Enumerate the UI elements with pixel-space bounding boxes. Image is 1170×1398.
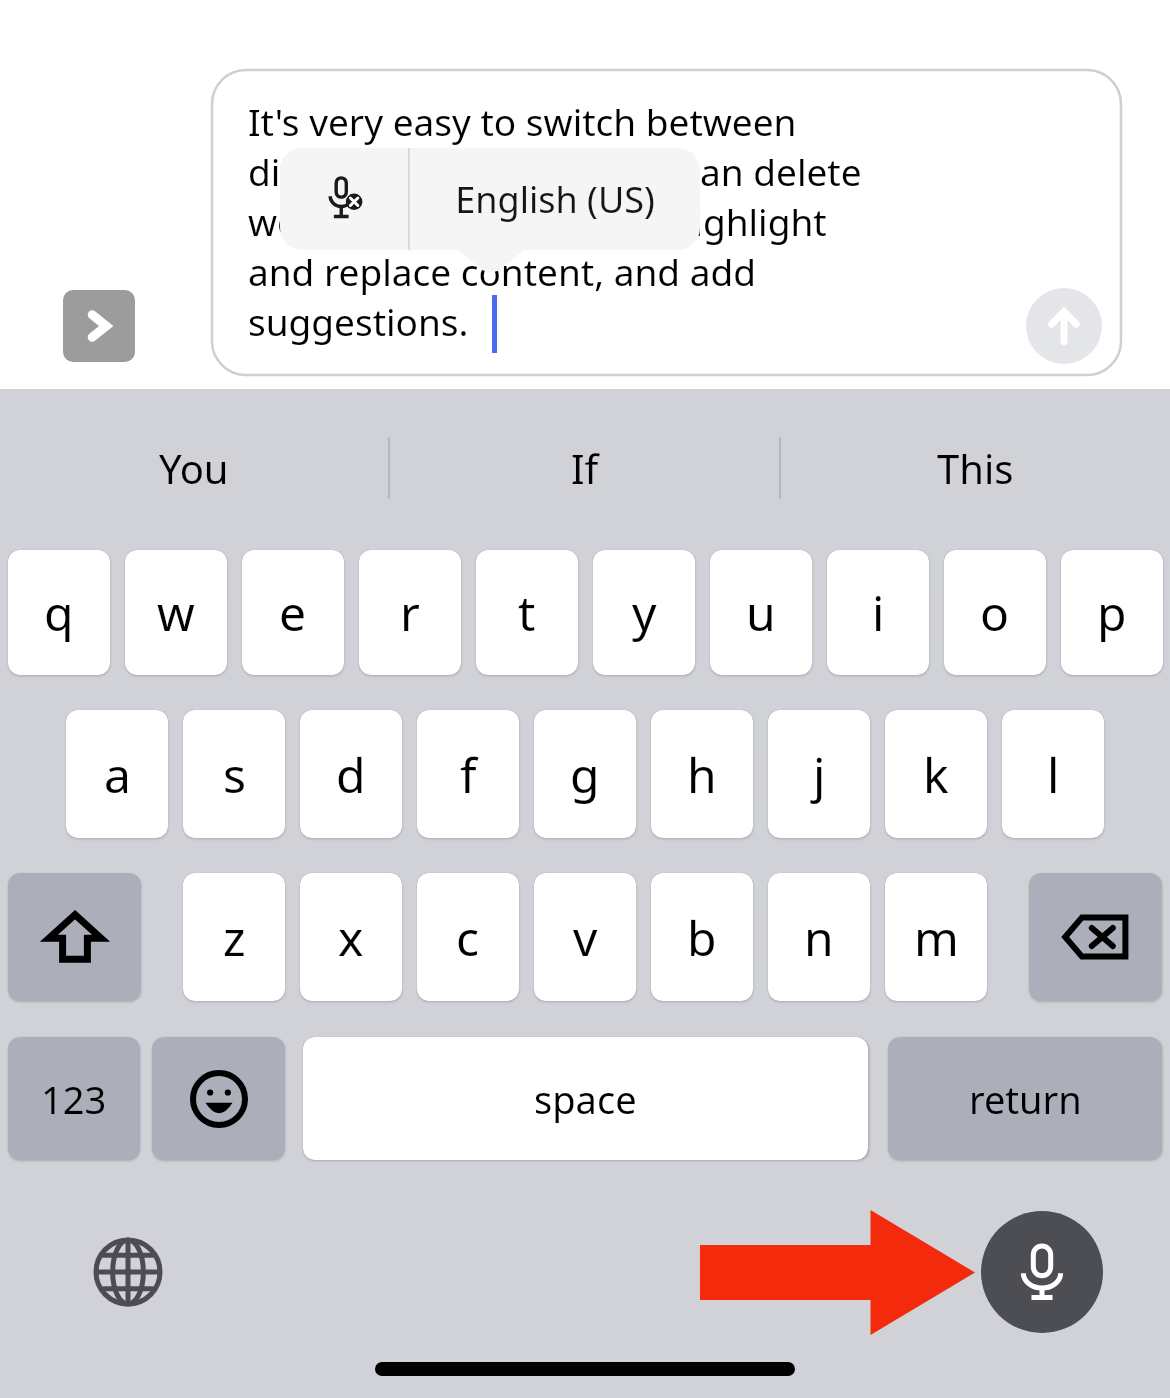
- staticText: This: [937, 441, 1014, 495]
- button[interactable]: You: [0, 400, 388, 535]
- staticText: i: [872, 580, 885, 645]
- staticText: n: [804, 905, 834, 970]
- staticText: d: [336, 742, 366, 807]
- staticText: j: [813, 742, 826, 807]
- staticText: You: [159, 441, 229, 495]
- staticText: l: [1047, 742, 1060, 807]
- button[interactable]: r: [359, 550, 461, 675]
- button[interactable]: z: [183, 873, 285, 1001]
- button[interactable]: g: [534, 710, 636, 838]
- staticText: e: [279, 580, 307, 645]
- staticText: o: [980, 580, 1010, 645]
- staticText: s: [223, 742, 246, 807]
- button[interactable]: y: [593, 550, 695, 675]
- button[interactable]: t: [476, 550, 578, 675]
- staticText: It's very easy to switch between: [248, 96, 797, 146]
- button[interactable]: Emoji: [152, 1037, 285, 1160]
- button[interactable]: k: [885, 710, 987, 838]
- staticText: t: [518, 580, 536, 645]
- button[interactable]: n: [768, 873, 870, 1001]
- staticText: x: [338, 905, 364, 970]
- button[interactable]: i: [827, 550, 929, 675]
- staticText: y: [632, 580, 657, 645]
- staticText: f: [460, 742, 477, 807]
- staticText: 123: [41, 1073, 107, 1125]
- button[interactable]: h: [651, 710, 753, 838]
- staticText: words as you're writing, highlight: [248, 196, 827, 246]
- button[interactable]: f: [417, 710, 519, 838]
- button[interactable]: Return: [888, 1037, 1162, 1160]
- button[interactable]: [212, 70, 1121, 375]
- button[interactable]: l: [1002, 710, 1104, 838]
- staticText: different languages. You can delete: [248, 146, 862, 196]
- button[interactable]: Dictation: [981, 1211, 1103, 1333]
- staticText: If: [571, 441, 599, 495]
- button[interactable]: o: [944, 550, 1046, 675]
- staticText: g: [570, 742, 600, 807]
- button[interactable]: x: [300, 873, 402, 1001]
- button[interactable]: Shift: [8, 873, 141, 1001]
- button[interactable]: e: [242, 550, 344, 675]
- staticText: w: [157, 580, 195, 645]
- staticText: return: [969, 1073, 1082, 1125]
- button[interactable]: space: [303, 1037, 868, 1160]
- staticText: c: [456, 905, 480, 970]
- button[interactable]: This: [781, 400, 1170, 535]
- staticText: b: [687, 905, 717, 970]
- staticText: m: [914, 905, 959, 970]
- staticText: a: [104, 742, 131, 807]
- button[interactable]: v: [534, 873, 636, 1001]
- staticText: z: [223, 905, 246, 970]
- button[interactable]: w: [125, 550, 227, 675]
- staticText: k: [923, 742, 949, 807]
- staticText: q: [44, 580, 74, 645]
- staticText: and replace content, and add: [248, 246, 756, 296]
- staticText: v: [573, 905, 598, 970]
- staticText: suggestions.: [248, 296, 469, 346]
- staticText: h: [687, 742, 717, 807]
- button[interactable]: u: [710, 550, 812, 675]
- button[interactable]: b: [651, 873, 753, 1001]
- staticText: r: [400, 580, 420, 645]
- button[interactable]: q: [8, 550, 110, 675]
- button[interactable]: Mute dictation: [280, 148, 408, 250]
- staticText: p: [1097, 580, 1127, 645]
- staticText: English (US): [455, 175, 655, 224]
- button[interactable]: p: [1061, 550, 1163, 675]
- button[interactable]: a: [66, 710, 168, 838]
- button[interactable]: c: [417, 873, 519, 1001]
- button[interactable]: s: [183, 710, 285, 838]
- staticText: u: [746, 580, 776, 645]
- button[interactable]: If: [390, 400, 779, 535]
- button[interactable]: m: [885, 873, 987, 1001]
- button[interactable]: Send: [1026, 288, 1102, 364]
- button[interactable]: Backspace: [1029, 873, 1162, 1001]
- button[interactable]: d: [300, 710, 402, 838]
- button[interactable]: Next keyboard: [88, 1232, 168, 1312]
- staticText: space: [534, 1073, 637, 1125]
- button[interactable]: j: [768, 710, 870, 838]
- button[interactable]: Expand: [63, 290, 135, 362]
- button[interactable]: English (US): [410, 148, 700, 250]
- button[interactable]: Numbers: [8, 1037, 140, 1160]
